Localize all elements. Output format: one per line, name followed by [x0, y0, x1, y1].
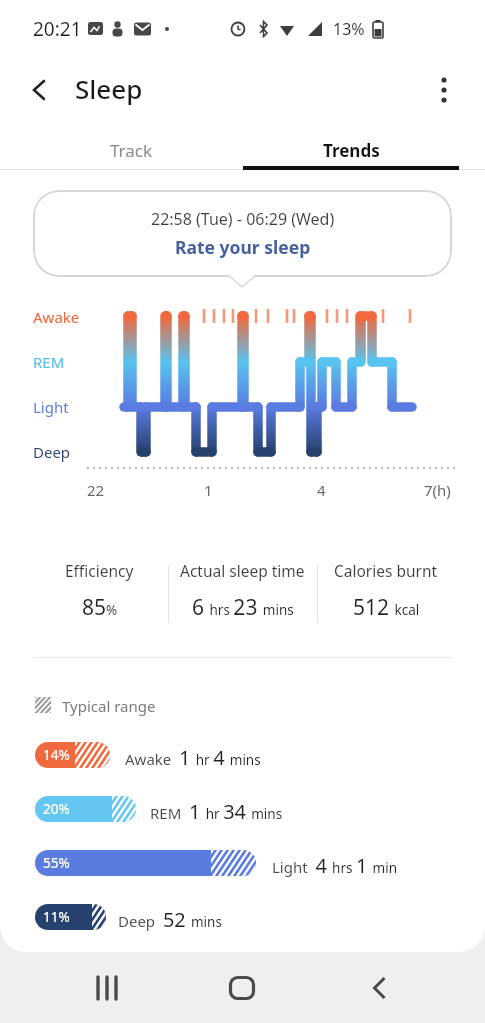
button[interactable] [355, 965, 405, 1011]
staticText: Calories burnt [334, 560, 438, 581]
button[interactable] [217, 965, 267, 1011]
staticText: Awake [33, 307, 80, 327]
staticText: 22:58 (Tue) - 06:29 (Wed) [151, 208, 335, 230]
staticText: 11% [43, 908, 70, 926]
staticText: Sleep [75, 71, 143, 106]
button[interactable]: 55% [35, 850, 256, 876]
button[interactable]: 11% [35, 904, 106, 930]
staticText: Actual sleep time [180, 560, 305, 581]
staticText: 6 hrs 23 mins [192, 593, 294, 622]
staticText: Rate your sleep [175, 235, 311, 259]
button[interactable]: 20% [35, 796, 136, 822]
staticText: 20% [43, 800, 70, 818]
staticText: Typical range [62, 696, 156, 716]
staticText: Deep 52 mins [118, 906, 222, 933]
button[interactable]: 14% [35, 742, 110, 768]
staticText: Awake 1 hr 4 mins [125, 744, 261, 771]
staticText: 512 kcal [353, 593, 420, 622]
staticText: REM 1 hr 34 mins [150, 798, 283, 825]
staticText: 22 [87, 480, 105, 500]
button[interactable]: Trends [242, 130, 460, 170]
staticText: 20:21 [33, 16, 82, 42]
staticText: 85% [82, 593, 118, 622]
staticText: Track [110, 139, 153, 162]
staticText: 4 [317, 480, 326, 500]
staticText: Deep [33, 442, 71, 462]
staticText: 14% [43, 746, 70, 764]
staticText: 13% [333, 18, 365, 40]
staticText: 7(h) [424, 480, 451, 500]
staticText: Light [33, 397, 69, 417]
staticText: Efficiency [65, 560, 134, 581]
button[interactable] [18, 70, 62, 110]
button[interactable]: Track [20, 130, 242, 170]
button[interactable] [82, 965, 132, 1011]
button[interactable] [424, 70, 464, 110]
button[interactable]: 22:58 (Tue) - 06:29 (Wed) [33, 190, 452, 277]
staticText: Light 4 hrs 1 min [272, 852, 398, 879]
staticText: 55% [43, 854, 70, 872]
staticText: 1 [204, 480, 213, 500]
staticText: Trends [323, 139, 380, 162]
staticText: REM [33, 352, 65, 372]
